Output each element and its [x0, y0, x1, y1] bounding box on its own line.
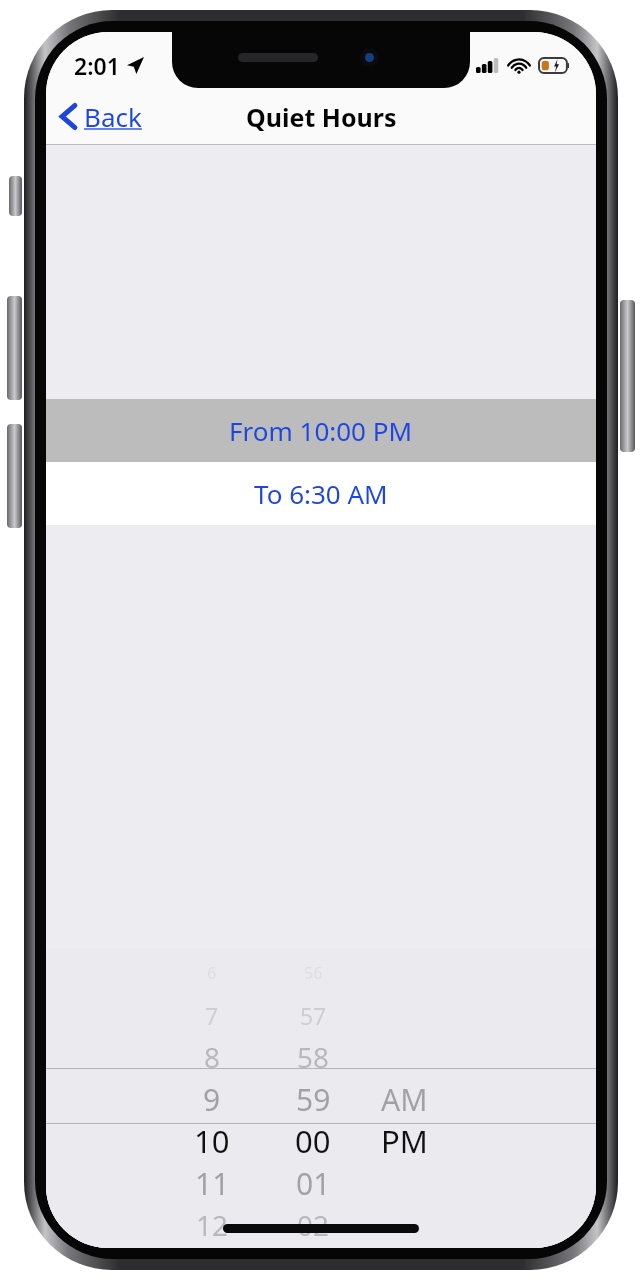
staticText: 12 — [196, 1206, 228, 1244]
staticText: From 10:00 PM — [229, 413, 413, 448]
staticText: 59 — [296, 1079, 331, 1120]
other: Back — [60, 102, 77, 131]
staticText: 56 — [304, 962, 323, 984]
staticText: 02 — [297, 1206, 329, 1244]
staticText: 8 — [204, 1038, 220, 1076]
staticText: To 6:30 AM — [254, 476, 388, 511]
staticText: 00 — [295, 1120, 331, 1162]
staticText: 01 — [296, 1163, 331, 1204]
staticText: 6 — [207, 962, 217, 984]
staticText: AM — [381, 1079, 428, 1120]
staticText: PM — [381, 1120, 428, 1162]
staticText: Back — [84, 99, 142, 134]
button[interactable]: From 10:00 PM — [46, 399, 596, 462]
button[interactable]: 6 — [46, 948, 596, 1248]
staticText: 57 — [300, 1000, 327, 1031]
staticText: 7 — [205, 1000, 219, 1031]
staticText: 2:01 — [74, 50, 120, 81]
staticText: 11 — [195, 1163, 230, 1204]
staticText: Quiet Hours — [246, 100, 397, 134]
button[interactable]: To 6:30 AM — [46, 462, 596, 525]
staticText: 10 — [194, 1120, 230, 1162]
button[interactable]: Back — [46, 91, 156, 142]
staticText: 9 — [203, 1079, 221, 1120]
staticText: 58 — [297, 1038, 329, 1076]
